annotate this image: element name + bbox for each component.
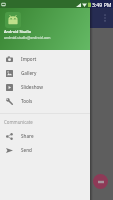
button[interactable]: More options (100, 11, 110, 24)
button[interactable]: Slideshow (0, 80, 90, 94)
button[interactable]: Import (0, 52, 90, 66)
button[interactable]: Send (0, 143, 90, 157)
staticText: Import (21, 56, 37, 62)
staticText: 3:49 PM (92, 1, 112, 8)
staticText: Send (21, 147, 32, 153)
button[interactable]: Gallery (0, 66, 90, 80)
button[interactable]: Tools (0, 94, 90, 108)
staticText: Tools (21, 98, 33, 104)
staticText: Communicate (4, 119, 33, 125)
button[interactable]: Share (0, 129, 90, 143)
button[interactable]: Android Studio (0, 0, 90, 50)
staticText: android.studio@android.com (4, 35, 51, 40)
staticText: Share (21, 133, 34, 139)
staticText: Android Studio (4, 29, 32, 34)
staticText: Slideshow (21, 84, 44, 90)
staticText: Gallery (21, 70, 37, 76)
button[interactable]: Send email (93, 174, 108, 189)
